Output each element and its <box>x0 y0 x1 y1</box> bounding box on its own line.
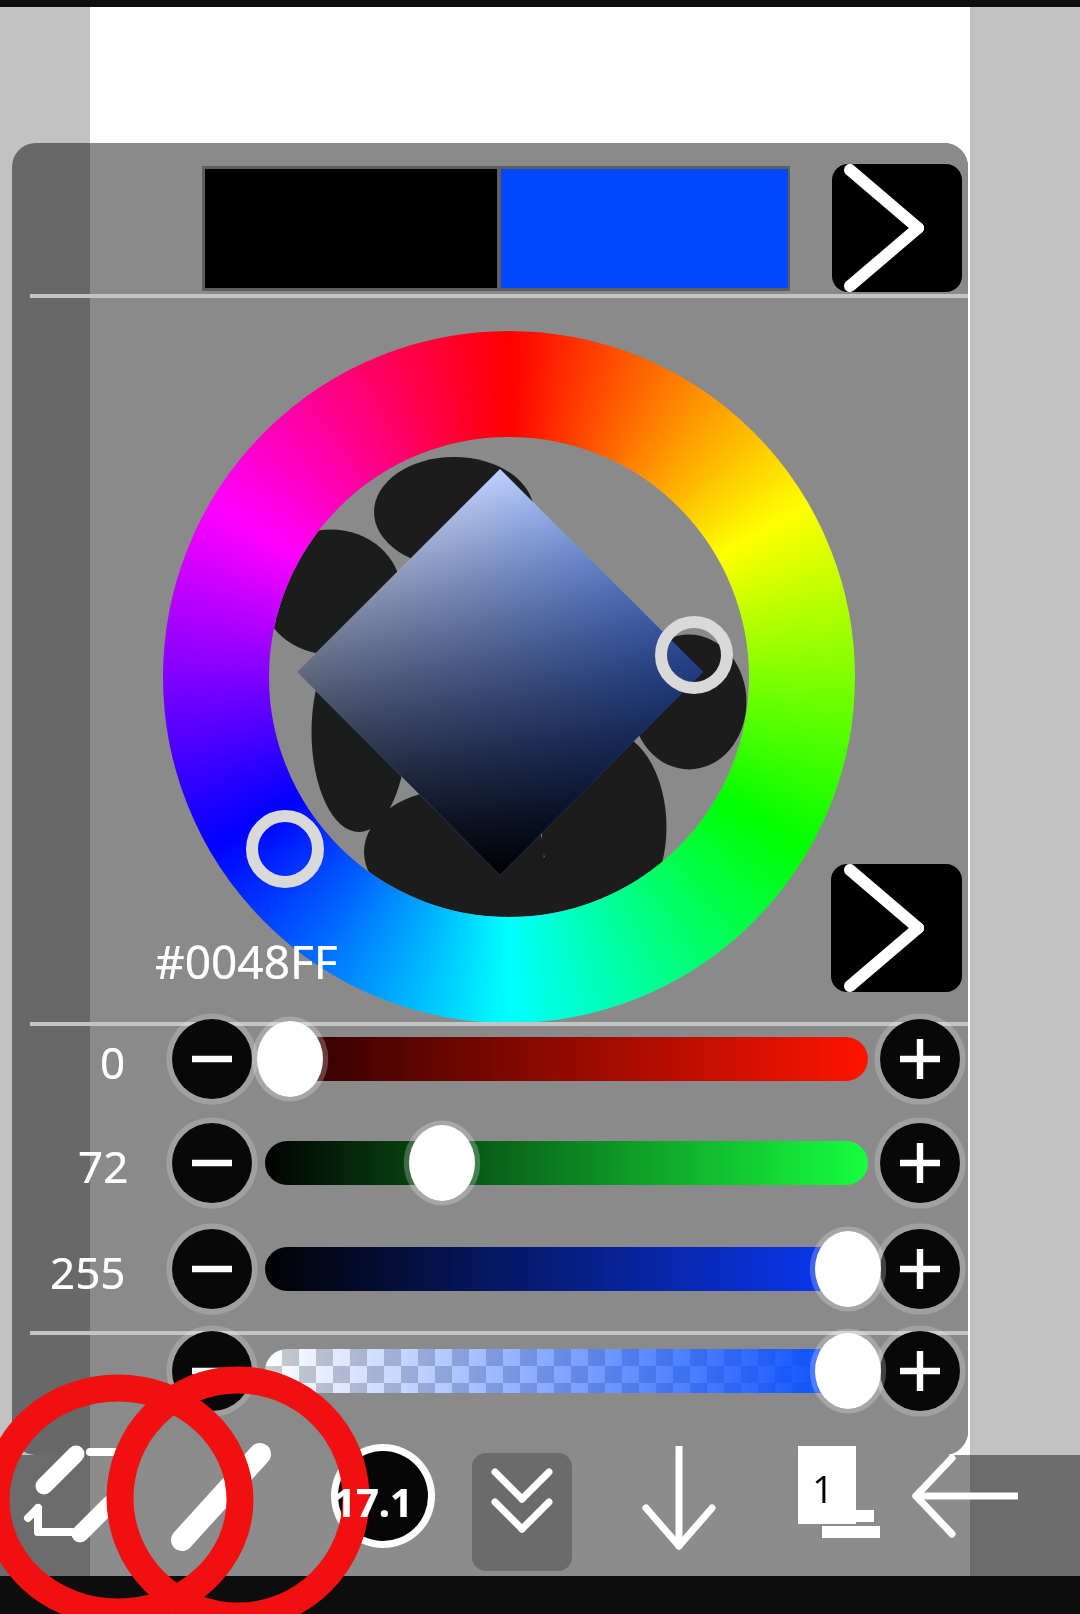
button[interactable]: Channel 1 slider <box>265 1131 868 1195</box>
button[interactable]: Decrease channel 3 <box>172 1331 252 1411</box>
staticText: 17.1 <box>333 1474 413 1528</box>
button[interactable]: Channel 2 slider <box>265 1237 868 1301</box>
staticText: 255 <box>50 1242 126 1302</box>
button[interactable]: Back <box>908 1455 1028 1576</box>
button[interactable]: Brush size 17.1 <box>330 1443 436 1549</box>
button[interactable]: Decrease channel 1 <box>172 1123 252 1203</box>
button[interactable]: Increase channel 1 <box>880 1123 960 1203</box>
button[interactable]: Increase channel 3 <box>880 1331 960 1411</box>
button[interactable]: Channel 3 slider <box>265 1339 868 1403</box>
button[interactable]: Decrease channel 2 <box>172 1229 252 1309</box>
staticText: #0048FF <box>155 930 338 993</box>
staticText: 0 <box>100 1032 126 1092</box>
button[interactable]: Next palette <box>832 164 962 292</box>
button[interactable]: Channel 0 slider <box>265 1027 868 1091</box>
button[interactable]: Collapse panel <box>472 1453 572 1571</box>
button[interactable]: Brush <box>160 1455 300 1576</box>
button[interactable]: Layers <box>768 1455 888 1576</box>
staticText: 1 <box>812 1462 834 1514</box>
button[interactable]: Next mode <box>831 864 962 992</box>
button[interactable]: Increase channel 2 <box>880 1229 960 1309</box>
button[interactable]: Decrease channel 0 <box>172 1019 252 1099</box>
button[interactable]: Swap brush and eraser <box>14 1455 154 1576</box>
staticText: 72 <box>78 1136 129 1196</box>
button[interactable]: Increase channel 0 <box>880 1019 960 1099</box>
button[interactable]: Colour wheel <box>163 331 855 1023</box>
button[interactable]: Import <box>619 1455 739 1576</box>
